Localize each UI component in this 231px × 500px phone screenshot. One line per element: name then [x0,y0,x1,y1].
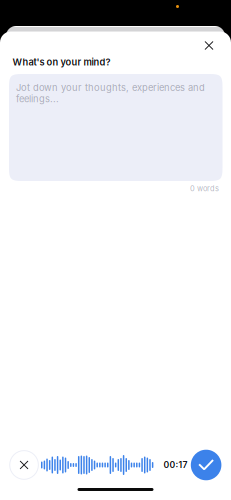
staticText: 00:17 [163,459,187,470]
staticText: 0 words [190,184,219,193]
button[interactable]: Cancel recording [10,451,38,479]
staticText: Jot down your thoughts, experiences and … [16,82,205,105]
button[interactable]: Close [198,34,220,56]
staticText: What's on your mind? [12,56,110,68]
button[interactable]: Finish recording [191,450,221,480]
